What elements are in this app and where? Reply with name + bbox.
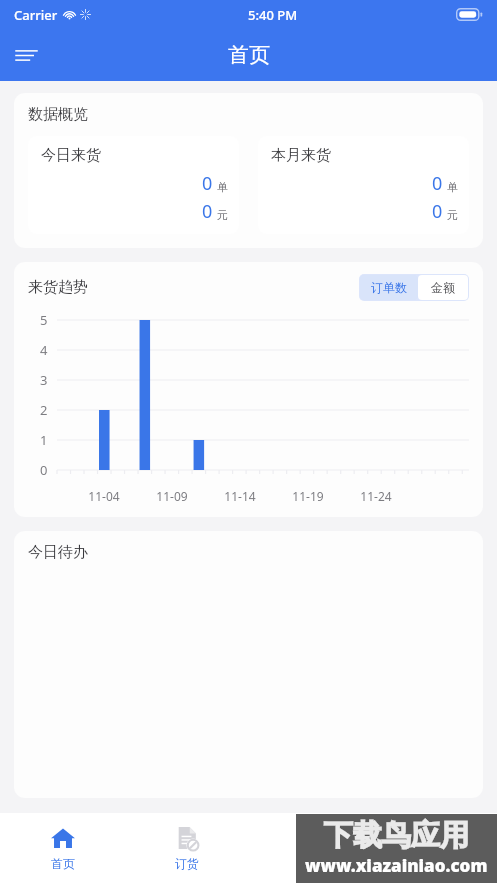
staticText: 今日来货 — [41, 146, 101, 165]
staticText: www.xiazainiao.com — [305, 854, 488, 877]
staticText: 来货趋势 — [28, 278, 88, 297]
staticText: 金额 — [431, 280, 455, 295]
staticText: 0 — [40, 461, 48, 479]
button[interactable]: 订货 — [125, 813, 249, 883]
staticText: 首页 — [51, 856, 75, 871]
staticText: 2 — [40, 401, 48, 419]
staticText: Carrier — [14, 6, 58, 24]
button[interactable]: Menu — [4, 33, 48, 77]
staticText: 订货 — [175, 856, 199, 871]
button[interactable]: 本月来货 — [258, 136, 469, 234]
staticText: 0 — [202, 171, 213, 196]
staticText: 3 — [40, 371, 48, 389]
staticText: 0 — [432, 199, 443, 224]
staticText: 0 — [432, 171, 443, 196]
staticText: 订单数 — [371, 280, 407, 295]
staticText: 下载鸟应用 — [324, 817, 469, 854]
staticText: 单 — [217, 180, 228, 194]
staticText: 首页 — [228, 42, 270, 68]
staticText: 元 — [217, 208, 228, 222]
staticText: 单 — [447, 180, 458, 194]
staticText: 11-19 — [286, 488, 330, 504]
button[interactable]: 首页 — [0, 813, 125, 883]
button[interactable]: 订单数 — [360, 275, 418, 300]
staticText: 5:40 PM — [248, 6, 298, 24]
staticText: 元 — [447, 208, 458, 222]
staticText: 11-24 — [354, 488, 398, 504]
staticText: 11-09 — [150, 488, 194, 504]
button[interactable]: 今日来货 — [28, 136, 239, 234]
staticText: 0 — [202, 199, 213, 224]
staticText: 4 — [40, 341, 48, 359]
staticText: 11-14 — [218, 488, 262, 504]
staticText: 数据概览 — [28, 105, 88, 124]
staticText: 本月来货 — [271, 146, 331, 165]
staticText: 11-04 — [82, 488, 126, 504]
staticText: 5 — [40, 311, 48, 329]
staticText: 1 — [40, 431, 48, 449]
button[interactable]: 金额 — [418, 275, 468, 300]
staticText: 今日待办 — [28, 543, 88, 562]
